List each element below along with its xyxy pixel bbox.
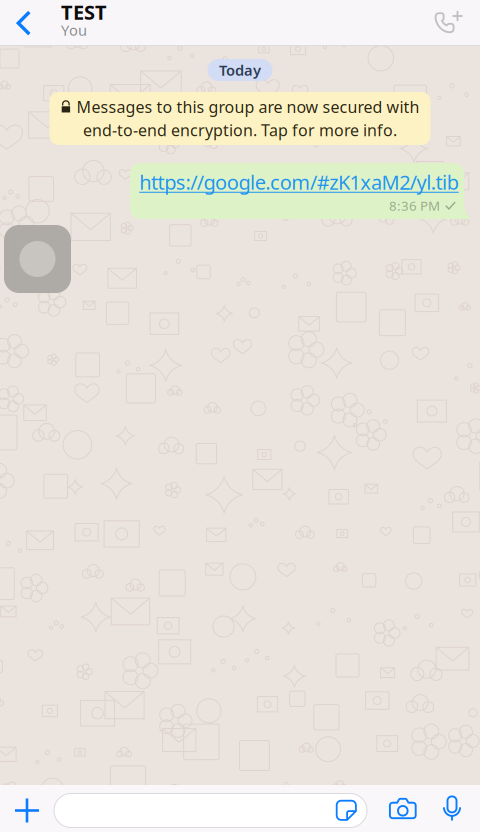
- staticText: 8:36 PM: [389, 197, 440, 214]
- button[interactable]: Stickers: [326, 793, 367, 827]
- staticText: https://google.com/#zK1xaM2/yl.tib: [139, 169, 459, 195]
- button[interactable]: Record voice message: [432, 785, 472, 832]
- button[interactable]: Camera: [381, 785, 425, 832]
- staticText: You: [61, 20, 87, 40]
- button[interactable]: Attach: [4, 787, 50, 832]
- button[interactable]: Back: [0, 0, 48, 46]
- staticText: TEST: [61, 0, 107, 25]
- staticText: Messages to this group are now secured w…: [76, 96, 419, 117]
- button[interactable]: Add call: [418, 0, 480, 46]
- staticText: end-to-end encryption. Tap for more info…: [83, 119, 397, 141]
- staticText: Today: [219, 60, 261, 80]
